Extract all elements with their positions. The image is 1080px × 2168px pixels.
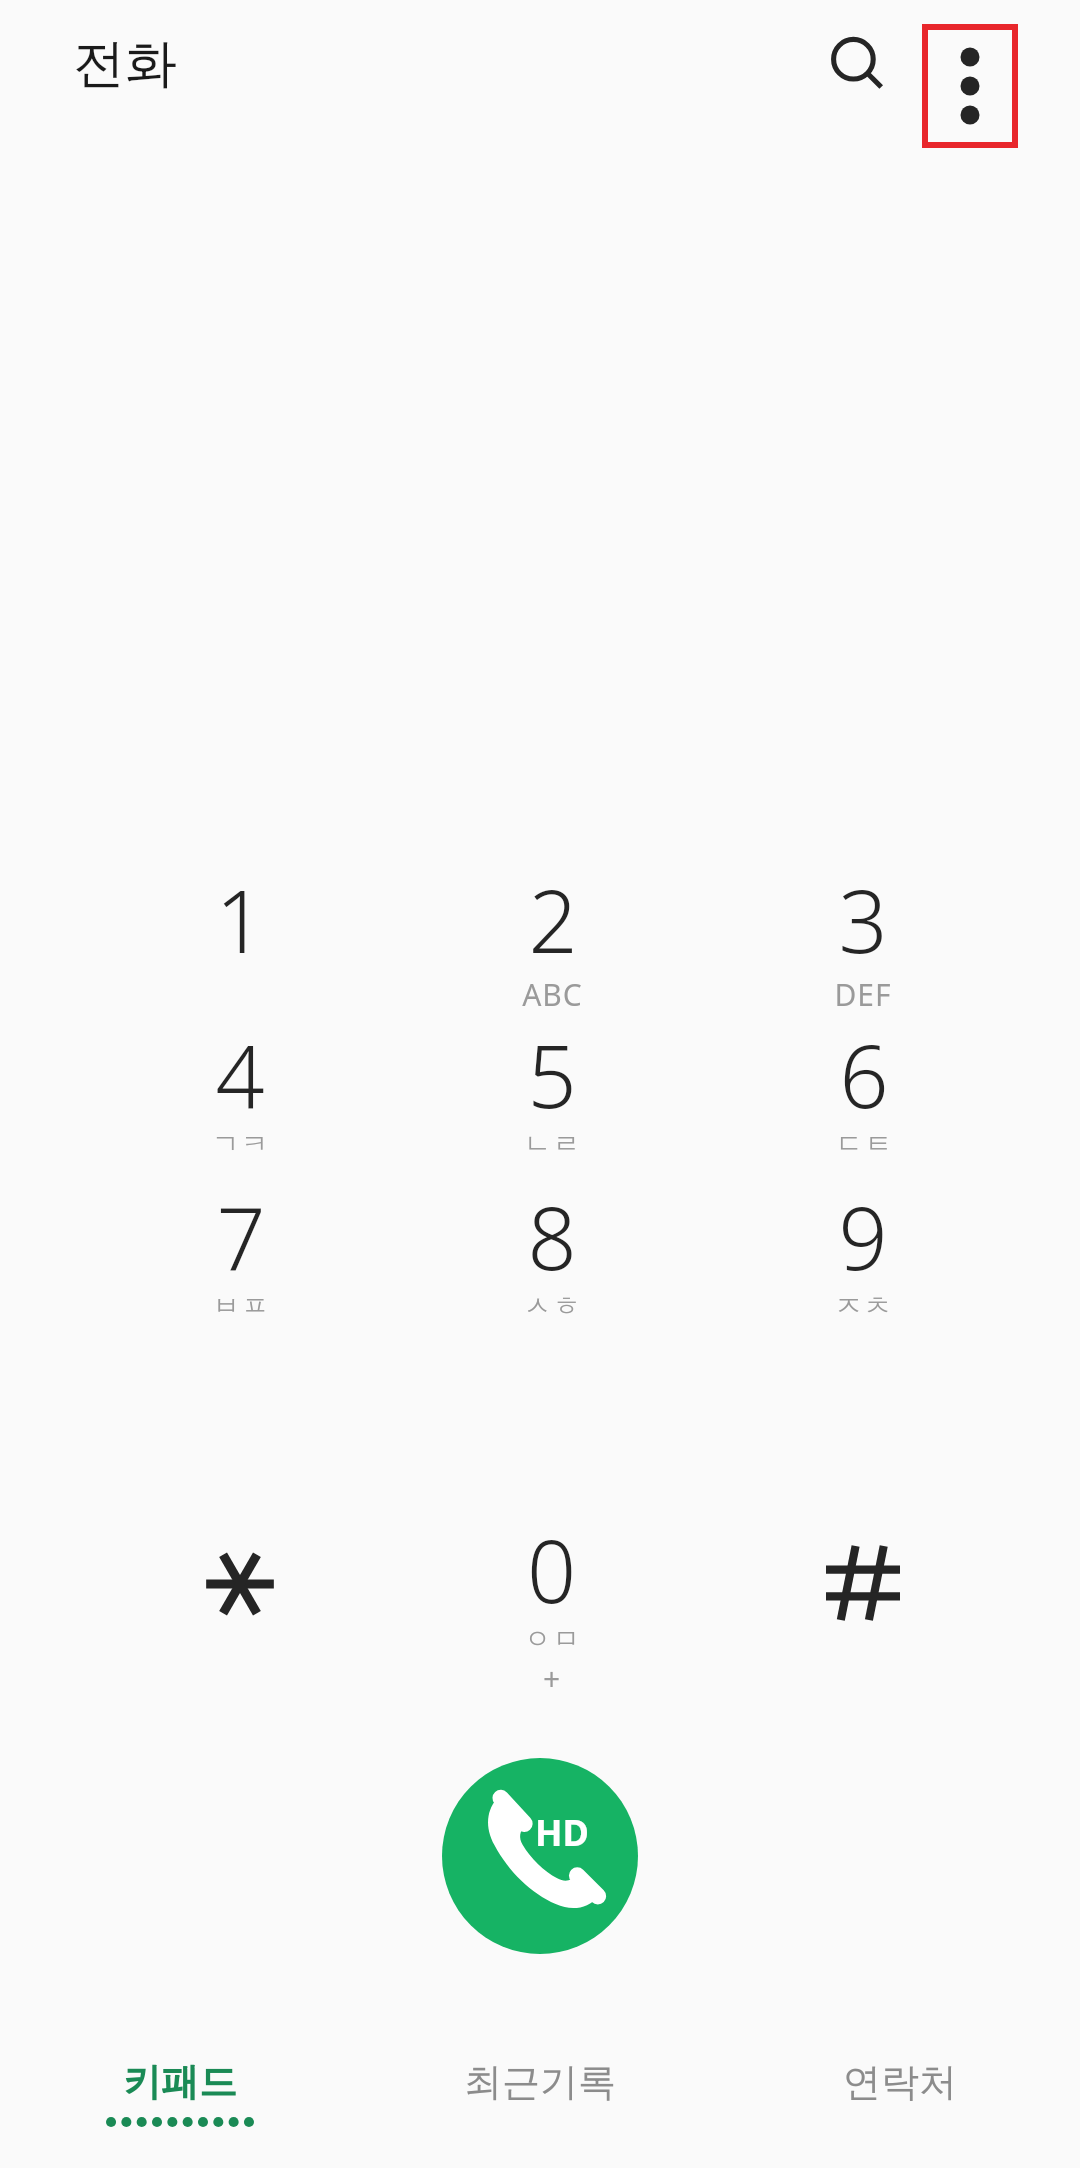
button[interactable]: 4 bbox=[115, 1014, 365, 1174]
staticText: 9 bbox=[838, 1178, 888, 1295]
staticText: ㄴㄹ bbox=[523, 1127, 581, 1161]
staticText: 3 bbox=[838, 861, 888, 978]
staticText: 2 bbox=[528, 861, 578, 978]
staticText: ABC bbox=[522, 974, 583, 1015]
staticText: 연락처 bbox=[843, 2058, 957, 2106]
button[interactable]: 연락처 bbox=[720, 2040, 1080, 2168]
button[interactable]: More options bbox=[922, 24, 1018, 148]
button[interactable]: Search bbox=[803, 10, 911, 118]
button[interactable]: 2 bbox=[427, 859, 677, 1019]
button[interactable]: 9 bbox=[738, 1176, 988, 1336]
button[interactable]: 0 bbox=[427, 1509, 677, 1709]
staticText: ㅇㅁ bbox=[523, 1622, 581, 1656]
button[interactable]: 최근기록 bbox=[360, 2040, 720, 2168]
button[interactable]: 1 bbox=[115, 859, 365, 1019]
staticText: 최근기록 bbox=[464, 2058, 616, 2106]
staticText: 6 bbox=[839, 1016, 889, 1133]
staticText: ㅅㅎ bbox=[523, 1289, 581, 1323]
button[interactable]: 5 bbox=[427, 1014, 677, 1174]
staticText: ㅂㅍ bbox=[212, 1289, 270, 1323]
staticText: 7 bbox=[216, 1178, 266, 1295]
button[interactable]: Pound bbox=[738, 1500, 988, 1670]
staticText: 8 bbox=[527, 1178, 577, 1295]
staticText: ㅈㅊ bbox=[834, 1289, 892, 1323]
staticText: 전화 bbox=[73, 31, 177, 97]
staticText: ㄷㅌ bbox=[835, 1127, 893, 1161]
staticText: 5 bbox=[527, 1016, 577, 1133]
staticText: HD bbox=[535, 1808, 589, 1857]
staticText: 키패드 bbox=[123, 2058, 237, 2106]
staticText: DEF bbox=[834, 974, 892, 1015]
staticText: ㄱㅋ bbox=[211, 1127, 269, 1161]
staticText: + bbox=[543, 1658, 561, 1699]
button[interactable]: 키패드 bbox=[0, 2040, 360, 2168]
staticText: 4 bbox=[215, 1016, 265, 1133]
staticText: 1 bbox=[215, 861, 265, 978]
staticText: 0 bbox=[527, 1511, 577, 1628]
button[interactable]: 8 bbox=[427, 1176, 677, 1336]
button[interactable]: Call bbox=[442, 1758, 638, 1954]
button[interactable]: 6 bbox=[738, 1014, 988, 1174]
button[interactable]: 7 bbox=[115, 1176, 365, 1336]
button[interactable]: 3 bbox=[738, 859, 988, 1019]
button[interactable]: Star bbox=[115, 1500, 365, 1670]
